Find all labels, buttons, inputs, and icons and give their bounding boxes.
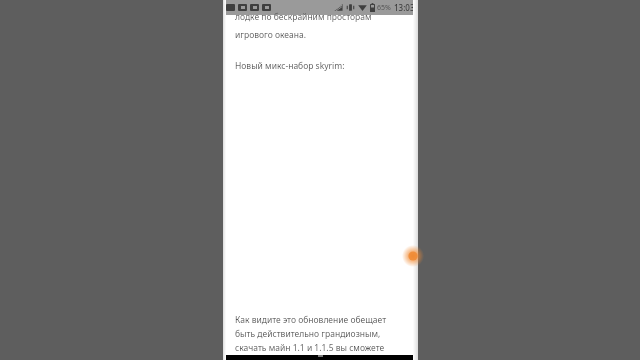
staticText: игрового океана.: [235, 29, 306, 41]
staticText: 65%: [377, 3, 391, 13]
staticText: Новый микс-набор skyrim:: [235, 60, 345, 72]
button[interactable]: Scroll to comments: [402, 245, 424, 267]
staticText: 13:03: [394, 2, 415, 13]
staticText: лодке по бескрайним просторам: [235, 11, 372, 22]
staticText: Как видите это обновление обещает быть д…: [235, 314, 387, 353]
